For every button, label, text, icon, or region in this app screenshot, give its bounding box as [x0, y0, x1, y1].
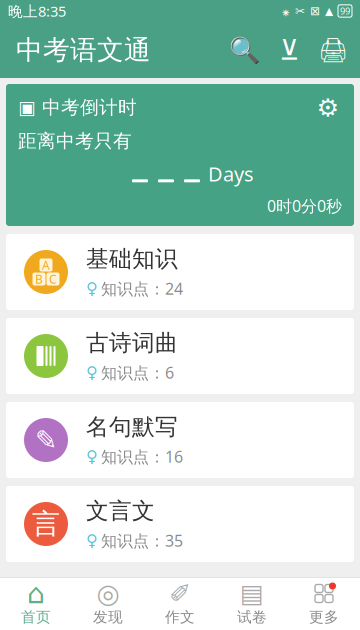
- staticText: ♀: [86, 447, 98, 465]
- staticText: 更多: [309, 608, 339, 626]
- staticText: 文言文: [86, 497, 155, 525]
- staticText: 0时0分0秒: [267, 195, 342, 216]
- button[interactable]: 古诗词曲: [6, 318, 354, 394]
- staticText: 发现: [93, 608, 123, 626]
- button[interactable]: 下载: [272, 33, 306, 67]
- staticText: B: [35, 271, 43, 287]
- button[interactable]: ⌂: [0, 578, 72, 630]
- staticText: ⁕: [282, 2, 290, 20]
- staticText: 言: [32, 507, 60, 541]
- staticText: 中考倒计时: [42, 96, 137, 119]
- staticText: ♀: [86, 531, 98, 549]
- button[interactable]: 打印: [316, 33, 350, 67]
- staticText: 知识点：6: [101, 362, 174, 383]
- button[interactable]: 搜索: [228, 33, 262, 67]
- staticText: 知识点：16: [101, 446, 183, 467]
- staticText: ⚙: [316, 93, 339, 122]
- staticText: 中考语文通: [16, 34, 151, 66]
- button[interactable]: A: [6, 234, 354, 310]
- staticText: 🖨: [318, 36, 348, 64]
- staticText: 名句默写: [86, 413, 178, 441]
- staticText: ♀: [86, 363, 98, 381]
- button[interactable]: 言: [6, 486, 354, 562]
- staticText: ⊠: [310, 4, 320, 18]
- staticText: ▲: [325, 5, 333, 17]
- staticText: 试卷: [237, 608, 267, 626]
- staticText: C: [49, 271, 57, 287]
- staticText: Days: [208, 161, 254, 187]
- staticText: 知识点：35: [101, 530, 183, 551]
- staticText: 首页: [21, 608, 51, 626]
- staticText: ◎: [96, 578, 119, 609]
- staticText: 作文: [165, 608, 195, 626]
- staticText: 知识点：24: [101, 278, 183, 299]
- staticText: ✂: [295, 4, 305, 18]
- staticText: 晚上8:35: [8, 1, 66, 21]
- staticText: A: [42, 257, 50, 273]
- button[interactable]: ▤: [216, 578, 288, 630]
- button[interactable]: 更多: [288, 578, 360, 630]
- staticText: 99: [340, 5, 350, 17]
- button[interactable]: ✐: [144, 578, 216, 630]
- staticText: ✎: [35, 425, 57, 455]
- staticText: ♀: [86, 279, 98, 297]
- staticText: 🔍: [229, 35, 261, 64]
- staticText: 基础知识: [86, 245, 178, 273]
- staticText: ⊻: [279, 34, 299, 66]
- staticText: 距离中考只有: [18, 130, 132, 152]
- staticText: ▤: [240, 579, 264, 608]
- staticText: ▣: [18, 97, 36, 118]
- staticText: 古诗词曲: [86, 329, 178, 357]
- button[interactable]: ✎: [6, 402, 354, 478]
- button[interactable]: 设置: [314, 96, 342, 120]
- staticText: ✐: [169, 578, 191, 609]
- staticText: ⌂: [27, 578, 45, 609]
- button[interactable]: ◎: [72, 578, 144, 630]
